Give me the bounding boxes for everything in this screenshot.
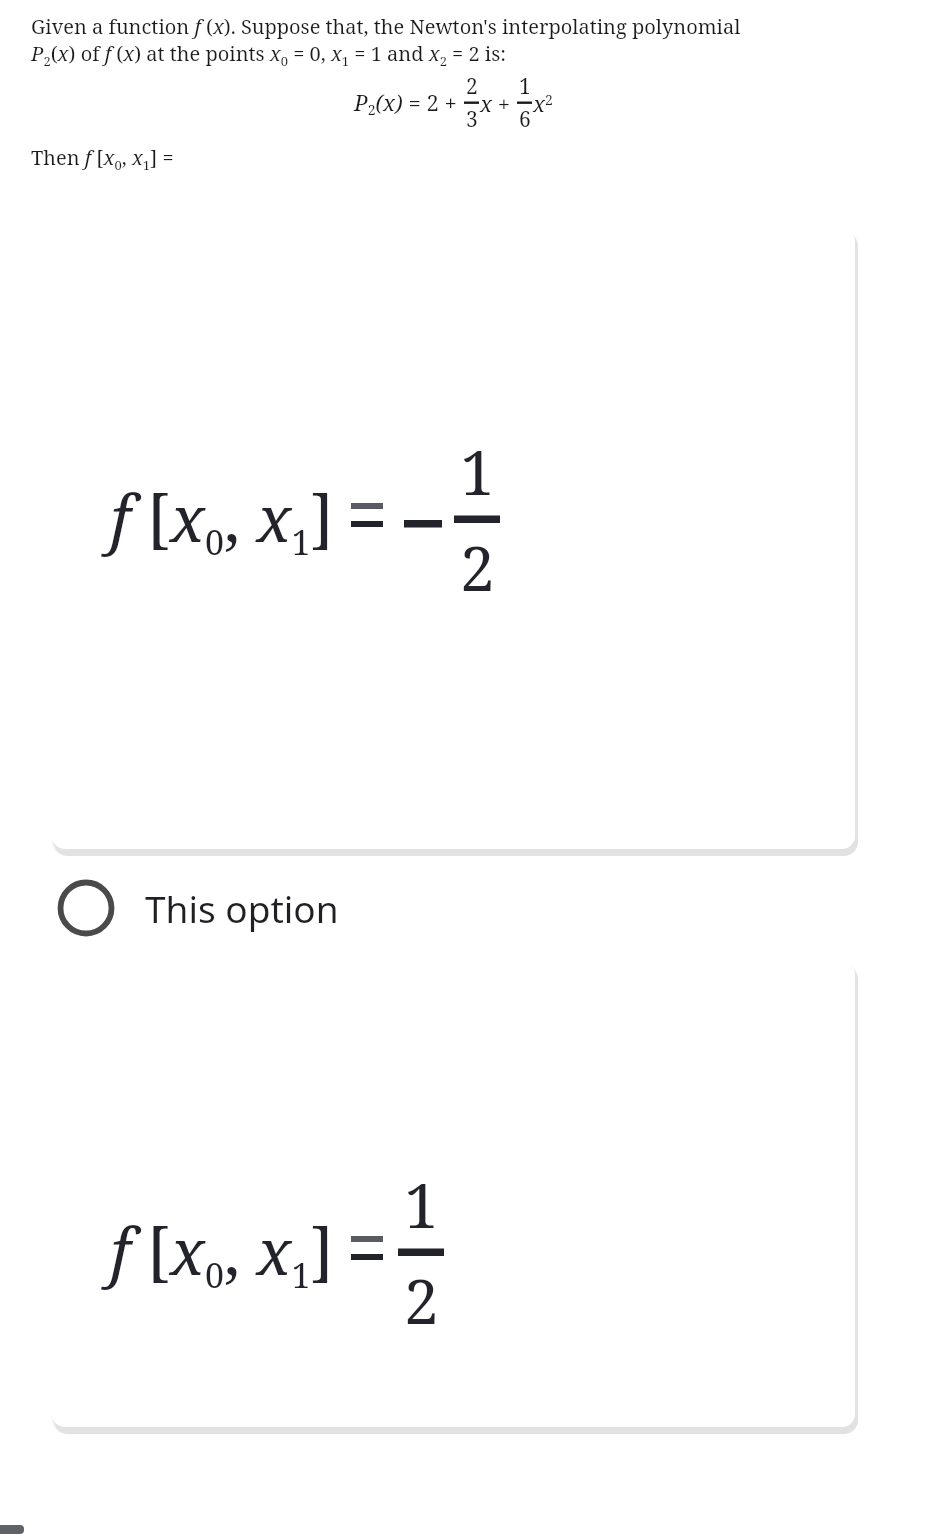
staticText: 1	[519, 72, 531, 101]
staticText: 1	[460, 429, 495, 513]
other: Select this option	[57, 879, 115, 937]
button[interactable]: Select this option	[0, 854, 927, 962]
staticText: 1	[404, 1162, 439, 1246]
staticText: x2	[533, 88, 553, 118]
staticText: 6	[519, 105, 531, 134]
button[interactable]: f [x0, x1]	[52, 229, 858, 854]
staticText: 3	[466, 105, 478, 134]
button[interactable]: f [x0, x1]	[52, 962, 858, 1432]
staticText: P2(x) = 2 +	[354, 87, 463, 119]
staticText: Given a function f (x). Suppose that, th…	[31, 13, 741, 40]
staticText: 2	[460, 525, 495, 609]
staticText: 2	[404, 1258, 439, 1342]
staticText: P2(x) of f (x) at the points x0 = 0, x1 …	[31, 40, 507, 69]
staticText: f [x0, x1]	[110, 1207, 334, 1298]
staticText: f [x0, x1]	[110, 474, 334, 565]
staticText: 2	[466, 72, 478, 101]
staticText: Then f [x0, x1] =	[31, 144, 174, 173]
staticText: This option	[145, 883, 339, 933]
staticText: x +	[480, 88, 516, 118]
